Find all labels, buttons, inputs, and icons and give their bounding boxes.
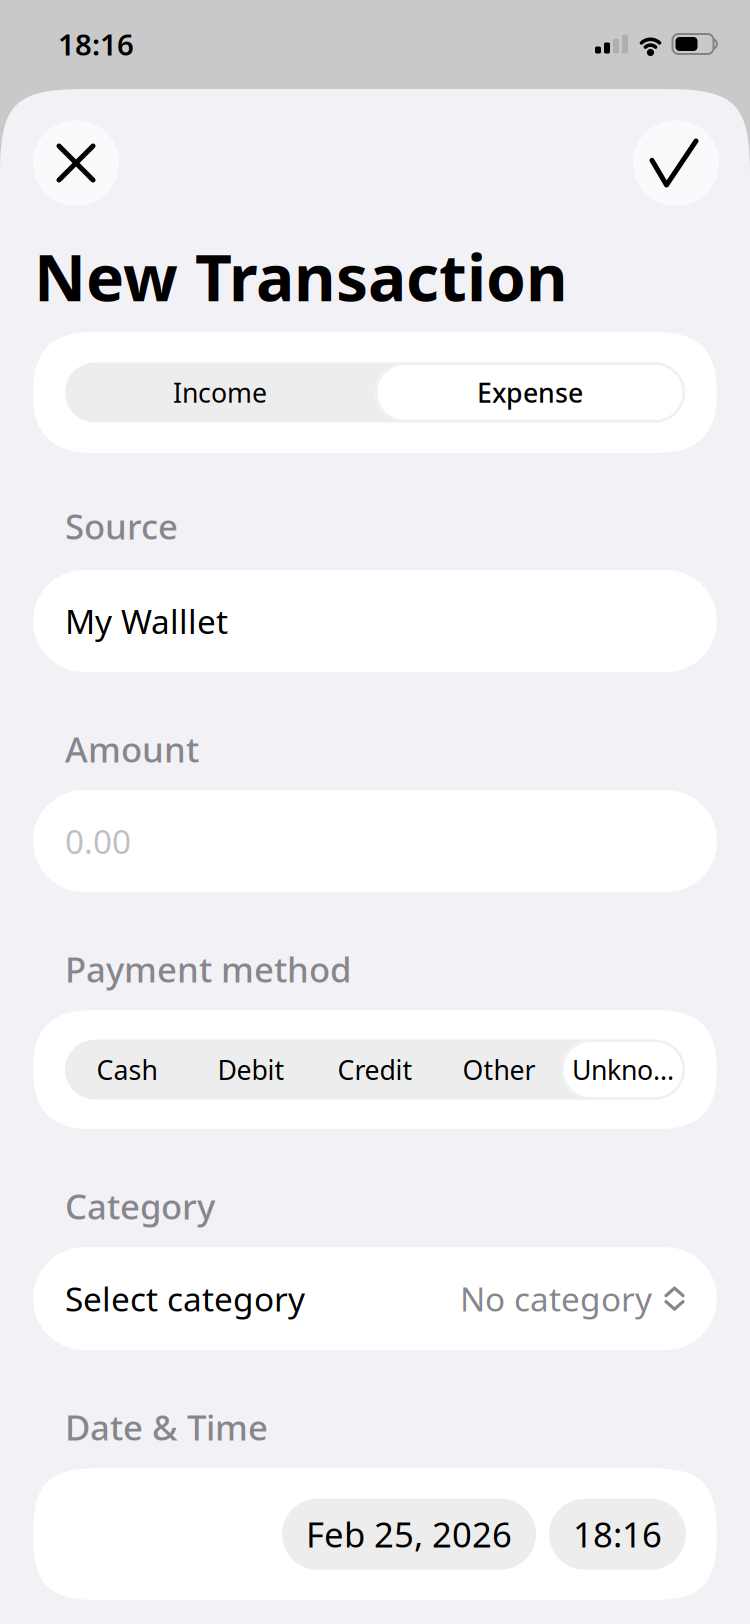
staticText: Feb 25, 2026: [306, 1511, 512, 1557]
staticText: Cash: [96, 1052, 157, 1087]
staticText: Payment method: [65, 946, 351, 992]
staticText: Category: [65, 1183, 215, 1229]
staticText: Date & Time: [65, 1404, 268, 1450]
button[interactable]: Credit: [313, 1040, 437, 1100]
staticText: Unkno...: [572, 1052, 674, 1087]
button[interactable]: Debit: [189, 1040, 313, 1100]
staticText: Expense: [477, 375, 583, 410]
button[interactable]: Expense: [375, 362, 685, 422]
button[interactable]: Close: [33, 120, 119, 206]
button[interactable]: 18:16: [549, 1499, 686, 1570]
button[interactable]: Other: [437, 1040, 561, 1100]
staticText: My Walllet: [65, 599, 228, 643]
staticText: Income: [173, 375, 267, 410]
staticText: Select category: [65, 1276, 305, 1321]
staticText: No category: [460, 1276, 652, 1321]
staticText: 18:16: [573, 1511, 662, 1557]
staticText: Debit: [217, 1052, 284, 1087]
button[interactable]: Confirm: [633, 120, 719, 206]
staticText: 18:16: [58, 24, 134, 63]
button[interactable]: Select category: [33, 1247, 717, 1350]
staticText: Source: [65, 503, 178, 549]
staticText: Amount: [65, 726, 199, 772]
button[interactable]: Cash: [65, 1040, 189, 1100]
staticText: 0.00: [65, 819, 131, 863]
button[interactable]: Unkno...: [561, 1040, 685, 1100]
staticText: Credit: [337, 1052, 412, 1087]
button[interactable]: Feb 25, 2026: [282, 1499, 536, 1570]
button[interactable]: Income: [65, 362, 375, 422]
staticText: New Transaction: [34, 234, 568, 319]
staticText: Other: [462, 1052, 535, 1087]
